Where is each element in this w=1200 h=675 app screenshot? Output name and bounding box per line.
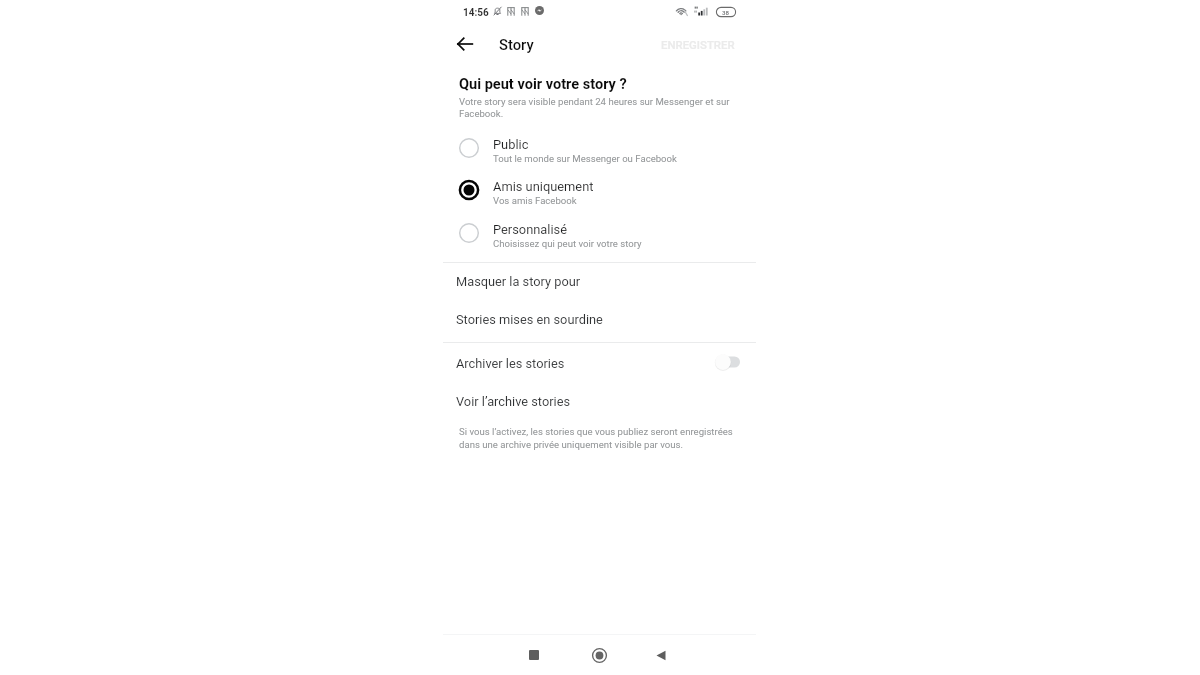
button[interactable]: Voir l’archive stories — [443, 382, 756, 420]
staticText: Archiver les stories — [456, 356, 565, 371]
button[interactable]: ENREGISTRER — [657, 32, 739, 56]
button[interactable]: Public — [443, 129, 756, 171]
staticText: Choisissez qui peut voir votre story — [493, 238, 642, 249]
staticText: 38 — [722, 9, 730, 16]
staticText: Si vous l’activez, les stories que vous … — [459, 426, 741, 450]
button[interactable]: Stories mises en sourdine — [443, 300, 756, 338]
button[interactable]: Back — [646, 640, 676, 670]
staticText: 14:56 — [463, 7, 489, 19]
button[interactable]: Archiver les stories, désactivé — [714, 354, 740, 372]
button[interactable]: Archiver les stories — [443, 347, 756, 379]
staticText: Public — [493, 137, 529, 152]
staticText: Qui peut voir votre story ? — [459, 76, 627, 93]
button[interactable]: Masquer la story pour — [443, 262, 756, 300]
staticText: Story — [499, 36, 534, 53]
staticText: Amis uniquement — [493, 179, 594, 194]
button[interactable]: Personnalisé — [443, 214, 756, 256]
button[interactable]: Recent apps — [519, 640, 549, 670]
staticText: Stories mises en sourdine — [456, 312, 603, 327]
staticText: Tout le monde sur Messenger ou Facebook — [493, 153, 677, 164]
staticText: ENREGISTRER — [661, 38, 735, 51]
staticText: Voir l’archive stories — [456, 394, 571, 409]
staticText: Personnalisé — [493, 222, 567, 237]
staticText: Masquer la story pour — [456, 274, 581, 289]
staticText: Vos amis Facebook — [493, 195, 577, 206]
staticText: Votre story sera visible pendant 24 heur… — [459, 96, 737, 119]
button[interactable]: Back — [452, 31, 478, 57]
button[interactable]: Amis uniquement — [443, 171, 756, 213]
button[interactable]: Home — [584, 640, 614, 670]
